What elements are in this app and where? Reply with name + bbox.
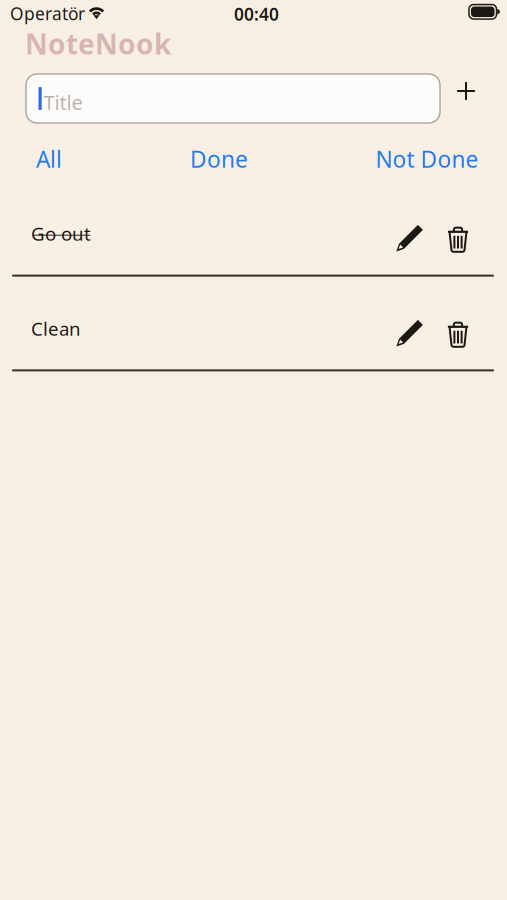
button[interactable]: Delete: [436, 312, 480, 356]
staticText: 00:40: [234, 2, 279, 25]
staticText: Go out: [31, 221, 91, 246]
staticText: Clean: [31, 316, 81, 341]
button[interactable]: Add: [446, 69, 486, 113]
staticText: NoteNook: [25, 25, 171, 62]
staticText: Done: [190, 144, 248, 174]
button[interactable]: Delete: [436, 217, 480, 261]
button[interactable]: All: [20, 142, 78, 176]
button[interactable]: Edit: [388, 311, 432, 355]
button[interactable]: Clean: [0, 294, 372, 363]
button[interactable]: Done: [180, 142, 258, 176]
staticText: Not Done: [375, 144, 478, 174]
button[interactable]: Go out: [0, 199, 372, 268]
button[interactable]: Edit: [388, 216, 432, 260]
button[interactable]: Title: [26, 74, 440, 123]
staticText: Operatör: [10, 2, 85, 25]
staticText: All: [36, 144, 62, 174]
staticText: Title: [43, 89, 82, 116]
button[interactable]: Not Done: [366, 142, 488, 176]
